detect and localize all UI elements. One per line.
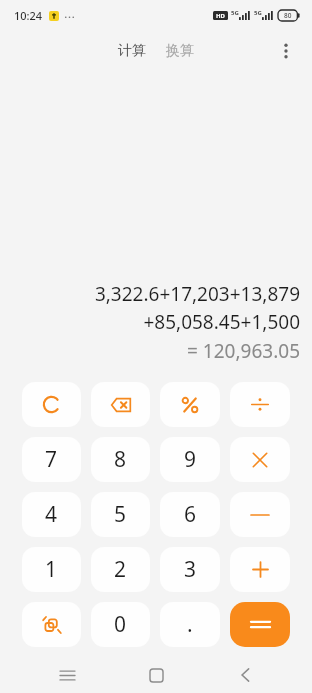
- button[interactable]: 1: [22, 547, 81, 592]
- staticText: 80: [284, 11, 292, 20]
- button[interactable]: 8: [91, 437, 150, 482]
- staticText: 3: [184, 555, 197, 584]
- button[interactable]: Multiply: [230, 437, 290, 482]
- button[interactable]: Recent apps: [45, 657, 89, 693]
- staticText: 9: [184, 445, 197, 474]
- staticText: 2: [114, 555, 127, 584]
- button[interactable]: Back: [223, 657, 267, 693]
- button[interactable]: Backspace: [91, 382, 150, 427]
- button[interactable]: 2: [91, 547, 150, 592]
- button[interactable]: Divide: [230, 382, 290, 427]
- staticText: 6: [184, 500, 197, 529]
- staticText: 4: [45, 500, 58, 529]
- staticText: 10:24: [14, 8, 43, 23]
- staticText: 换算: [166, 42, 194, 60]
- button[interactable]: 6: [160, 492, 220, 537]
- button[interactable]: 3: [160, 547, 220, 592]
- button[interactable]: Equals: [230, 602, 290, 647]
- button[interactable]: 5: [91, 492, 150, 537]
- staticText: 7: [45, 445, 58, 474]
- staticText: .: [187, 610, 193, 639]
- staticText: 5G: [231, 9, 239, 17]
- button[interactable]: Minus: [230, 492, 290, 537]
- button[interactable]: .: [160, 602, 220, 647]
- staticText: 5G: [254, 9, 262, 17]
- staticText: +85,058.45+1,500: [143, 309, 300, 335]
- button[interactable]: Clear: [22, 382, 81, 427]
- button[interactable]: Home: [134, 657, 178, 693]
- button[interactable]: More options: [268, 33, 304, 69]
- staticText: 3,322.6+17,203+13,879: [94, 281, 300, 307]
- button[interactable]: 4: [22, 492, 81, 537]
- button[interactable]: More functions: [22, 602, 81, 647]
- button[interactable]: 0: [91, 602, 150, 647]
- staticText: 计算: [118, 42, 146, 60]
- button[interactable]: 计算: [112, 38, 152, 64]
- staticText: = 120,963.05: [187, 338, 300, 364]
- button[interactable]: 9: [160, 437, 220, 482]
- staticText: 8: [114, 445, 127, 474]
- staticText: 0: [114, 610, 127, 639]
- staticText: 5: [114, 500, 127, 529]
- button[interactable]: Percent: [160, 382, 220, 427]
- staticText: 1: [45, 555, 58, 584]
- button[interactable]: Plus: [230, 547, 290, 592]
- button[interactable]: 7: [22, 437, 81, 482]
- staticText: HD: [216, 12, 225, 20]
- button[interactable]: 换算: [160, 38, 200, 64]
